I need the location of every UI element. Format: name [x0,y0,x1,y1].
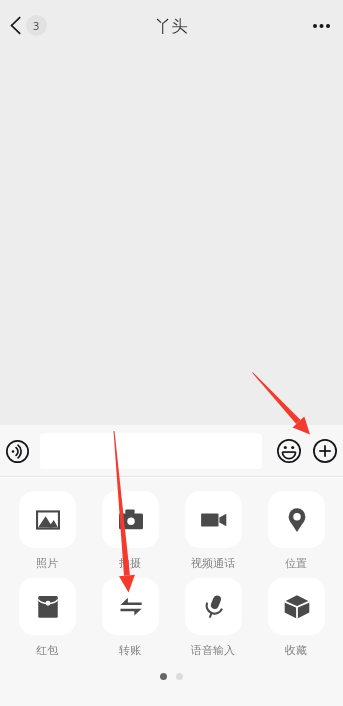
button[interactable]: Voice input [0,431,35,471]
button[interactable]: 红包 [11,578,83,657]
button[interactable]: 收藏 [260,578,332,657]
button[interactable]: Back [4,7,53,44]
button[interactable]: 拍摄 [94,491,166,570]
button[interactable] [40,433,262,469]
staticText: 语音输入 [191,643,235,657]
staticText: 红包 [36,643,58,657]
staticText: 位置 [285,556,307,570]
button[interactable]: Emoji [274,436,304,466]
button[interactable]: 照片 [11,491,83,570]
button[interactable]: 转账 [94,578,166,657]
staticText: 3 [33,18,40,33]
button[interactable]: 语音输入 [177,578,249,657]
staticText: 照片 [36,556,58,570]
staticText: 丫头 [155,16,188,37]
staticText: 视频通话 [191,556,235,570]
button[interactable]: 位置 [260,491,332,570]
staticText: 收藏 [285,643,307,657]
staticText: 转账 [119,643,141,657]
button[interactable]: More options [300,9,343,42]
button[interactable]: 视频通话 [177,491,249,570]
button[interactable]: More [310,436,340,466]
staticText: 拍摄 [119,556,141,570]
